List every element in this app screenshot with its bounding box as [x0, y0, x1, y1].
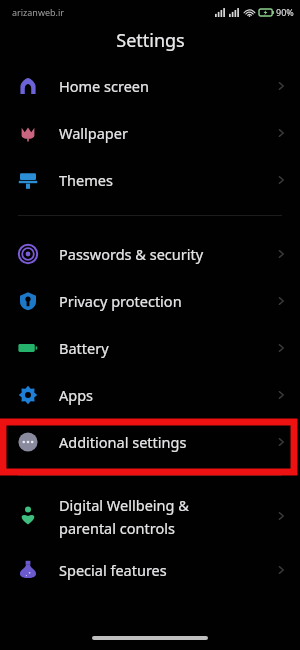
staticText: Additional settings — [59, 432, 274, 452]
staticText: Themes — [59, 170, 274, 190]
staticText: Privacy protection — [59, 291, 274, 311]
button[interactable]: Themes — [0, 156, 300, 203]
staticText: Digital Wellbeing & — [59, 495, 189, 515]
button[interactable]: Special features — [0, 546, 300, 593]
staticText: Wallpaper — [59, 123, 274, 143]
button[interactable]: Battery — [0, 324, 300, 371]
staticText: 90% — [276, 6, 294, 18]
staticText: Passwords & security — [59, 244, 274, 264]
button[interactable]: Home screen — [0, 62, 300, 109]
staticText: Special features — [59, 560, 274, 580]
staticText: Home screen — [59, 76, 274, 96]
button[interactable]: Additional settings — [0, 418, 300, 465]
button[interactable]: Digital Wellbeing & — [0, 486, 300, 546]
staticText: Apps — [59, 385, 274, 405]
button[interactable]: Wallpaper — [0, 109, 300, 156]
staticText: Settings — [116, 28, 185, 53]
staticText: arizanweb.ir — [12, 6, 65, 18]
button[interactable]: Passwords & security — [0, 230, 300, 277]
button[interactable]: Apps — [0, 371, 300, 418]
staticText: parental controls — [59, 518, 175, 538]
staticText: Battery — [59, 338, 274, 358]
button[interactable]: Privacy protection — [0, 277, 300, 324]
